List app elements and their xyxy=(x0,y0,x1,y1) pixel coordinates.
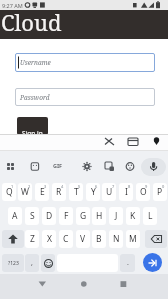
staticText: O xyxy=(140,186,147,198)
button[interactable]: H xyxy=(92,207,106,225)
staticText: . xyxy=(127,258,129,268)
button[interactable] xyxy=(143,253,162,272)
staticText: X xyxy=(47,233,52,245)
staticText: M xyxy=(129,233,137,245)
staticText: Q xyxy=(6,186,13,198)
staticText: C xyxy=(63,233,69,245)
button[interactable]: Username xyxy=(15,53,155,72)
staticText: F xyxy=(64,210,69,222)
button[interactable]: I xyxy=(119,183,133,201)
button[interactable]: N xyxy=(109,230,123,248)
staticText: Cloud xyxy=(1,7,62,37)
staticText: Username xyxy=(20,58,51,67)
staticText: J xyxy=(115,210,118,222)
staticText: K xyxy=(130,210,136,222)
staticText: W xyxy=(21,186,29,198)
staticText: Y xyxy=(91,186,96,198)
staticText: Password xyxy=(20,93,50,102)
button[interactable] xyxy=(110,276,140,297)
button[interactable]: ?123 xyxy=(2,254,24,272)
button[interactable] xyxy=(69,276,99,297)
button[interactable]: L xyxy=(143,207,157,225)
button[interactable]: J xyxy=(109,207,123,225)
button[interactable]: V xyxy=(76,230,90,248)
button[interactable]: U xyxy=(102,183,116,201)
staticText: V xyxy=(80,233,86,245)
staticText: E xyxy=(40,186,45,198)
button[interactable]: C xyxy=(59,230,73,248)
staticText: I xyxy=(125,186,128,198)
button[interactable]: W xyxy=(18,183,32,201)
button[interactable]: D xyxy=(42,207,56,225)
staticText: U xyxy=(106,186,113,198)
staticText: 6 xyxy=(95,184,98,189)
button[interactable]: O xyxy=(136,183,150,201)
staticText: 5 xyxy=(78,184,81,189)
staticText: T xyxy=(74,186,79,198)
button[interactable]: Sign in xyxy=(17,117,48,135)
staticText: 7 xyxy=(112,184,115,189)
button[interactable]: K xyxy=(126,207,140,225)
staticText: ?123 xyxy=(8,260,19,267)
staticText: L xyxy=(148,210,153,222)
staticText: P xyxy=(157,186,163,198)
button[interactable]: R xyxy=(52,183,66,201)
staticText: 8 xyxy=(128,184,131,189)
button[interactable]: , xyxy=(25,254,39,272)
staticText: 9:27 AM xyxy=(2,2,23,9)
button[interactable]: X xyxy=(42,230,56,248)
button[interactable]: . xyxy=(120,254,135,272)
button[interactable] xyxy=(141,158,166,176)
staticText: D xyxy=(46,210,53,222)
staticText: 0 xyxy=(162,184,165,189)
staticText: S xyxy=(30,210,35,222)
staticText: 3 xyxy=(44,184,47,189)
button[interactable]: F xyxy=(59,207,73,225)
staticText: Sign in xyxy=(22,129,43,135)
button[interactable]: Z xyxy=(25,230,39,248)
staticText: B xyxy=(96,233,102,245)
button[interactable]: T xyxy=(69,183,83,201)
staticText: H xyxy=(96,210,103,222)
staticText: A xyxy=(12,210,18,222)
button[interactable]: S xyxy=(25,207,39,225)
staticText: GIF xyxy=(53,162,63,169)
button[interactable]: E xyxy=(35,183,49,201)
button[interactable]: Password xyxy=(15,88,155,106)
button[interactable] xyxy=(145,230,167,248)
staticText: 4 xyxy=(61,184,64,189)
button[interactable] xyxy=(41,254,55,272)
staticText: R xyxy=(56,186,62,198)
staticText: Z xyxy=(30,233,35,245)
button[interactable] xyxy=(2,230,24,248)
button[interactable]: A xyxy=(8,207,22,225)
staticText: 2 xyxy=(28,184,31,189)
button[interactable]: M xyxy=(126,230,140,248)
button[interactable]: Y xyxy=(86,183,100,201)
staticText: 9 xyxy=(145,184,148,189)
button[interactable]: P xyxy=(153,183,167,201)
staticText: , xyxy=(31,258,33,268)
staticText: 1 xyxy=(11,184,14,189)
button[interactable]: G xyxy=(76,207,90,225)
button[interactable]: Q xyxy=(2,183,16,201)
button[interactable] xyxy=(28,276,58,297)
button[interactable]: B xyxy=(92,230,106,248)
staticText: G xyxy=(80,210,87,222)
staticText: N xyxy=(113,233,120,245)
